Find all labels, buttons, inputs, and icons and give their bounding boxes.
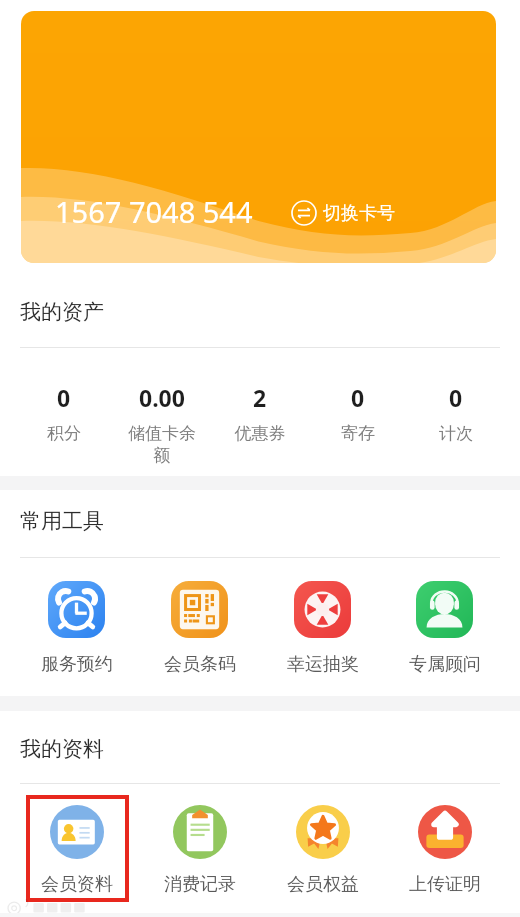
staticText: 消费记录: [164, 873, 236, 896]
staticText: 计次: [419, 423, 493, 444]
button[interactable]: 0: [407, 382, 505, 444]
staticText: 0: [57, 382, 71, 413]
button[interactable]: 上传证明: [384, 805, 505, 896]
staticText: 寄存: [321, 423, 395, 444]
button[interactable]: 2: [211, 382, 309, 444]
staticText: 服务预约: [41, 653, 113, 676]
staticText: 储值卡余额: [125, 423, 199, 466]
button[interactable]: 专属顾问: [384, 581, 505, 676]
button[interactable]: 会员条码: [138, 581, 261, 676]
staticText: 0: [351, 382, 365, 413]
staticText: 会员权益: [287, 873, 359, 896]
button[interactable]: 会员权益: [261, 805, 384, 896]
staticText: 专属顾问: [409, 653, 481, 676]
staticText: 积分: [27, 423, 101, 444]
staticText: 常用工具: [20, 508, 104, 534]
staticText: 幸运抽奖: [287, 653, 359, 676]
staticText: 上传证明: [409, 873, 481, 896]
button[interactable]: 服务预约: [15, 581, 138, 676]
button[interactable]: 0: [309, 382, 407, 444]
button[interactable]: 0: [15, 382, 113, 444]
button[interactable]: 0.00: [113, 382, 211, 466]
button[interactable]: 切换卡号: [285, 194, 401, 232]
staticText: 会员资料: [41, 873, 113, 896]
staticText: 我的资产: [20, 299, 104, 325]
button[interactable]: 1567 7048 544: [21, 11, 496, 263]
button[interactable]: 消费记录: [138, 805, 261, 896]
button[interactable]: 幸运抽奖: [261, 581, 384, 676]
button[interactable]: 会员资料: [15, 805, 138, 896]
staticText: 0.00: [139, 382, 185, 413]
staticText: 切换卡号: [323, 202, 395, 225]
staticText: 0: [449, 382, 463, 413]
staticText: 会员条码: [164, 653, 236, 676]
staticText: 优惠券: [223, 423, 297, 444]
staticText: 2: [253, 382, 267, 413]
staticText: 1567 7048 544: [55, 192, 253, 231]
staticText: 我的资料: [20, 736, 104, 762]
